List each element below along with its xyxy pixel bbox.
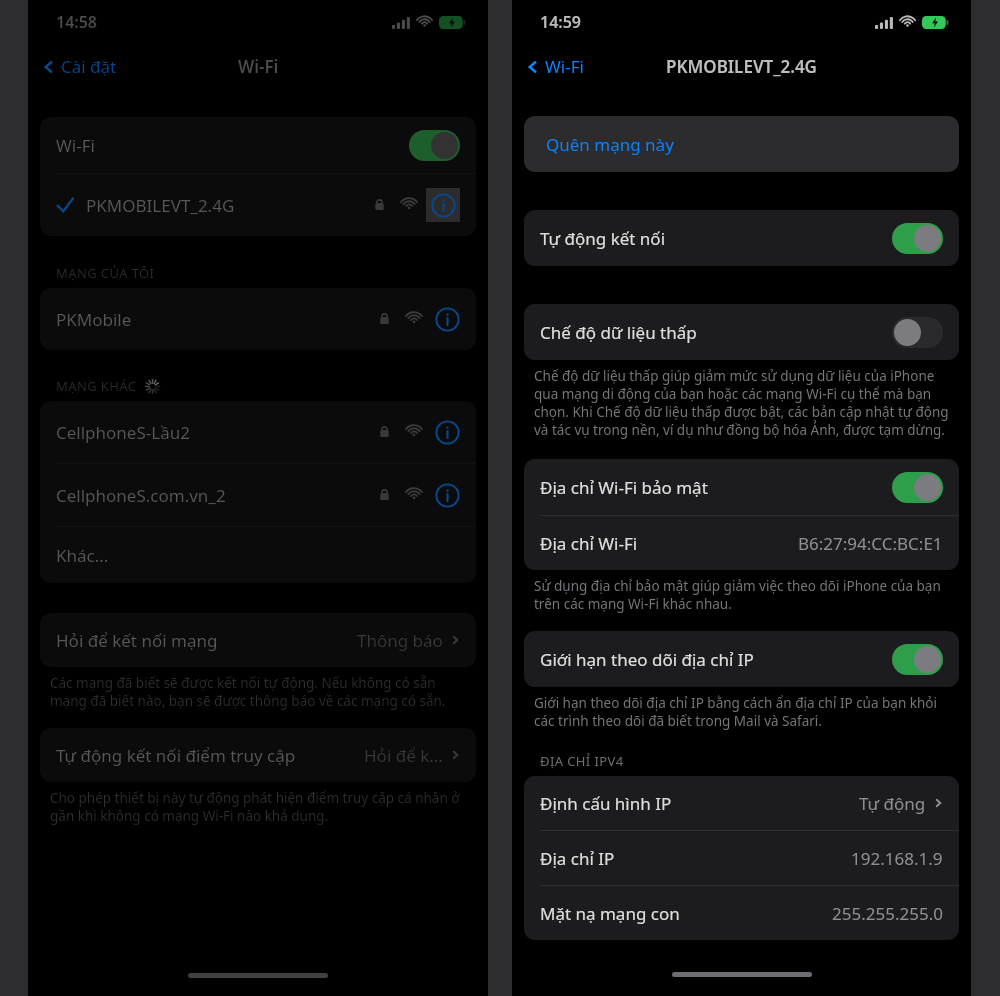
staticText: Tự động: [859, 792, 926, 815]
button[interactable]: Mặt nạ mạng con: [524, 886, 959, 940]
staticText: MẠNG KHÁC: [56, 377, 137, 395]
button[interactable]: Giới hạn theo dõi địa chỉ IP: [524, 631, 959, 687]
staticText: Tự động kết nối điểm truy cập: [56, 744, 296, 767]
staticText: Wi-Fi: [238, 55, 279, 78]
staticText: CellphoneS.com.vn_2: [56, 484, 226, 507]
button[interactable]: Khác...: [40, 527, 476, 583]
staticText: PKMOBILEVT_2.4G: [666, 55, 817, 78]
staticText: Giới hạn theo dõi địa chỉ IP bằng cách ẩ…: [534, 694, 949, 730]
staticText: Cho phép thiết bị này tự động phát hiện …: [50, 789, 466, 825]
staticText: MẠNG CỦA TÔI: [56, 264, 155, 282]
button[interactable]: Quên mạng này: [524, 116, 959, 172]
staticText: Địa chỉ IP: [540, 847, 615, 870]
button[interactable]: Switch on: [892, 644, 943, 675]
button[interactable]: Chế độ dữ liệu thấp: [524, 304, 959, 360]
staticText: 192.168.1.9: [851, 847, 943, 870]
button[interactable]: Switch on: [892, 472, 943, 503]
staticText: Hỏi để k...: [364, 744, 443, 767]
staticText: 14:58: [56, 11, 98, 33]
staticText: Địa chỉ Wi-Fi: [540, 532, 638, 555]
staticText: Địa chỉ Wi-Fi bảo mật: [540, 476, 892, 499]
button[interactable]: Cài đặt: [42, 55, 117, 78]
staticText: Định cấu hình IP: [540, 792, 672, 815]
button[interactable]: PKMOBILEVT_2.4G: [40, 174, 476, 236]
staticText: Giới hạn theo dõi địa chỉ IP: [540, 648, 892, 671]
staticText: ĐỊA CHỈ IPV4: [540, 752, 624, 770]
staticText: Cài đặt: [61, 55, 117, 78]
button[interactable]: Switch on: [409, 130, 460, 161]
button[interactable]: Network information: [435, 307, 460, 332]
button[interactable]: Tự động kết nối điểm truy cập: [40, 728, 476, 782]
button[interactable]: Network information: [435, 483, 460, 508]
button[interactable]: Địa chỉ IP: [524, 831, 959, 885]
button[interactable]: Tự động kết nối: [524, 210, 959, 266]
staticText: Thông báo: [357, 629, 443, 652]
staticText: Quên mạng này: [546, 133, 674, 156]
staticText: B6:27:94:CC:BC:E1: [798, 532, 943, 555]
button[interactable]: Network information: [435, 420, 460, 445]
button[interactable]: Switch off: [892, 317, 943, 348]
staticText: Khác...: [56, 544, 109, 567]
staticText: Wi-Fi: [545, 55, 584, 78]
staticText: CellphoneS-Lầu2: [56, 421, 190, 444]
staticText: PKMOBILEVT_2.4G: [86, 194, 235, 217]
button[interactable]: Định cấu hình IP: [524, 776, 959, 830]
button[interactable]: Hỏi để kết nối mạng: [40, 613, 476, 667]
staticText: Hỏi để kết nối mạng: [56, 629, 218, 652]
button[interactable]: Switch on: [892, 223, 943, 254]
staticText: Mặt nạ mạng con: [540, 902, 680, 925]
staticText: Tự động kết nối: [540, 227, 892, 250]
button[interactable]: CellphoneS.com.vn_2: [40, 464, 476, 526]
staticText: PKMobile: [56, 308, 132, 331]
button[interactable]: Wi-Fi: [526, 55, 584, 78]
staticText: Sử dụng địa chỉ bảo mật giúp giảm việc t…: [534, 577, 949, 613]
staticText: Wi-Fi: [56, 134, 409, 157]
button[interactable]: Địa chỉ Wi-Fi bảo mật: [524, 459, 959, 515]
staticText: 14:59: [540, 11, 582, 33]
button[interactable]: Địa chỉ Wi-Fi: [524, 516, 959, 570]
button[interactable]: Network information: [426, 188, 460, 222]
staticText: Các mạng đã biết sẽ được kết nối tự động…: [50, 674, 466, 710]
staticText: Chế độ dữ liệu thấp: [540, 321, 892, 344]
staticText: Chế độ dữ liệu thấp giúp giảm mức sử dụn…: [534, 367, 949, 439]
button[interactable]: Wi-Fi: [40, 117, 476, 173]
button[interactable]: CellphoneS-Lầu2: [40, 401, 476, 463]
button[interactable]: PKMobile: [40, 288, 476, 350]
staticText: 255.255.255.0: [832, 902, 943, 925]
